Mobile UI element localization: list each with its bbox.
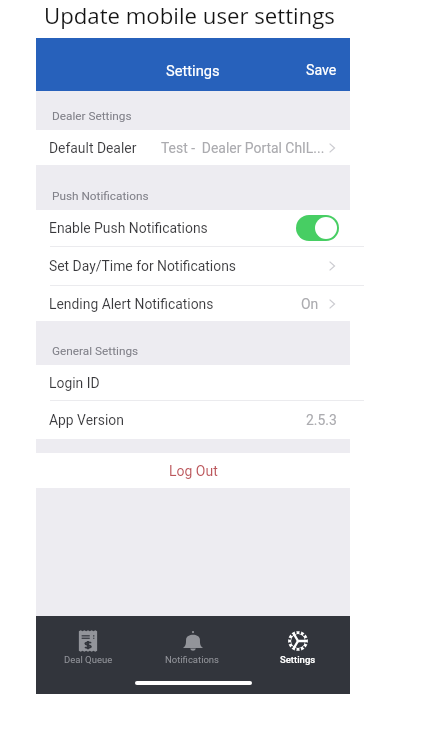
staticText: On — [301, 296, 319, 312]
button[interactable]: Save — [296, 56, 350, 85]
staticText: App Version — [49, 412, 124, 428]
staticText: Lending Alert Notifications — [49, 296, 214, 312]
button[interactable]: Log Out — [36, 453, 350, 488]
staticText: General Settings — [52, 344, 139, 358]
staticText: Notifications — [165, 654, 220, 665]
staticText: Deal Queue — [64, 654, 113, 665]
staticText: 2.5.3 — [306, 412, 337, 428]
staticText: Dealer Settings — [52, 109, 132, 123]
button[interactable]: Settings — [245, 616, 350, 694]
button[interactable]: Enable Push Notifications — [36, 210, 350, 246]
button[interactable]: Login ID — [36, 365, 350, 400]
button[interactable]: Default Dealer — [36, 130, 350, 165]
staticText: Default Dealer — [49, 140, 137, 156]
staticText: Save — [306, 62, 337, 79]
staticText: Settings — [166, 62, 220, 79]
button[interactable]: Notifications — [140, 616, 245, 694]
staticText: Push Notifications — [52, 189, 149, 203]
staticText: Log Out — [169, 463, 218, 479]
button[interactable]: Set Day/Time for Notifications — [36, 247, 350, 285]
staticText: Login ID — [49, 375, 100, 391]
staticText: Test - Dealer Portal ChIL... — [161, 140, 325, 156]
button[interactable]: Lending Alert Notifications — [36, 286, 350, 321]
staticText: Settings — [280, 654, 316, 665]
staticText: Enable Push Notifications — [49, 220, 208, 236]
staticText: Set Day/Time for Notifications — [49, 258, 237, 274]
button[interactable]: Deal Queue — [36, 616, 140, 694]
staticText: Update mobile user settings — [44, 0, 335, 30]
button[interactable]: App Version — [36, 401, 350, 439]
